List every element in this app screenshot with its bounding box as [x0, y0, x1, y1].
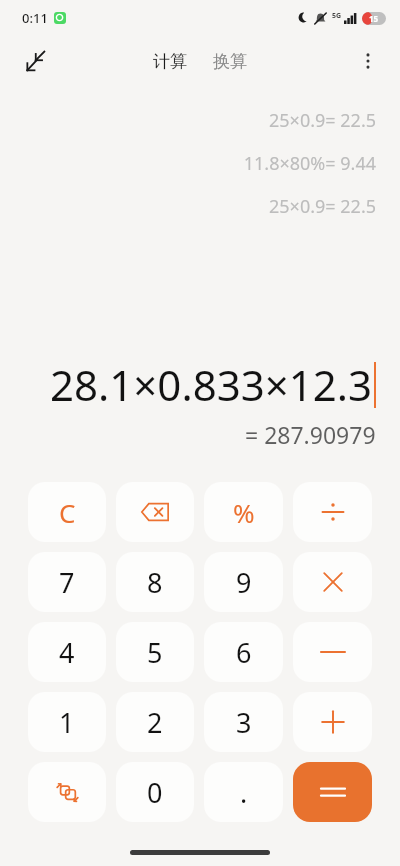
staticText: 15: [369, 13, 379, 24]
button[interactable]: 计算: [145, 45, 195, 78]
staticText: = 287.90979: [245, 419, 376, 450]
button[interactable]: 11.8×80%= 9.44: [243, 151, 376, 176]
staticText: .: [240, 774, 248, 811]
staticText: 计算: [153, 51, 187, 72]
button[interactable]: 8: [116, 552, 194, 612]
staticText: 4: [59, 634, 75, 671]
button[interactable]: Backspace: [116, 482, 194, 542]
button[interactable]: 换算: [205, 45, 255, 78]
button[interactable]: 6: [204, 622, 283, 682]
staticText: 7: [59, 564, 75, 601]
button[interactable]: Plus: [293, 692, 372, 752]
staticText: 25×0.9= 22.5: [269, 108, 376, 133]
button[interactable]: %: [204, 482, 283, 542]
button[interactable]: 25×0.9= 22.5: [269, 108, 376, 133]
button[interactable]: 25×0.9= 22.5: [269, 194, 376, 219]
staticText: %: [233, 495, 255, 530]
staticText: 6: [236, 634, 252, 671]
staticText: 0:11: [22, 9, 48, 27]
button[interactable]: Equals: [293, 762, 372, 822]
staticText: 换算: [213, 51, 247, 72]
staticText: 5G: [332, 11, 342, 21]
staticText: 3: [236, 704, 252, 741]
button[interactable]: .: [204, 762, 283, 822]
button[interactable]: 4: [28, 622, 106, 682]
staticText: 11.8×80%= 9.44: [243, 151, 376, 176]
button[interactable]: 7: [28, 552, 106, 612]
button[interactable]: Minus: [293, 622, 372, 682]
button[interactable]: More options: [348, 41, 388, 81]
button[interactable]: Collapse: [14, 41, 54, 81]
button[interactable]: 0: [116, 762, 194, 822]
staticText: 25×0.9= 22.5: [269, 194, 376, 219]
staticText: 0: [147, 774, 163, 811]
staticText: C: [59, 495, 76, 530]
button[interactable]: 2: [116, 692, 194, 752]
staticText: 2: [147, 704, 163, 741]
staticText: 28.1×0.833×12.3: [50, 356, 373, 413]
button[interactable]: 3: [204, 692, 283, 752]
staticText: 8: [147, 564, 163, 601]
button[interactable]: C: [28, 482, 106, 542]
staticText: 1: [59, 704, 75, 741]
button[interactable]: Convert units: [28, 762, 106, 822]
staticText: 5: [147, 634, 163, 671]
button[interactable]: 1: [28, 692, 106, 752]
button[interactable]: Divide: [293, 482, 372, 542]
button[interactable]: 5: [116, 622, 194, 682]
button[interactable]: 9: [204, 552, 283, 612]
button[interactable]: Multiply: [293, 552, 372, 612]
staticText: 9: [236, 564, 252, 601]
